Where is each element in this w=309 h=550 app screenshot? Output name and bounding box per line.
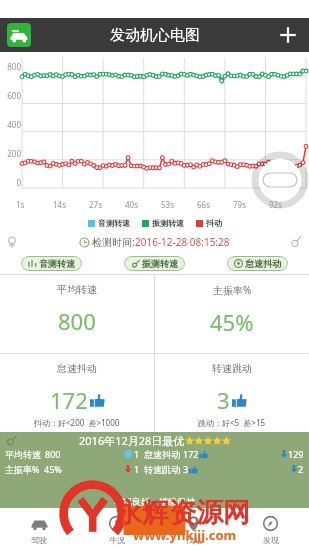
staticText: 检测时间: bbox=[92, 235, 135, 249]
staticText: 音测转速 bbox=[39, 258, 75, 269]
staticText: www.yhkjjj.com bbox=[133, 526, 237, 544]
staticText: 600 bbox=[1, 90, 21, 101]
staticText: 172 bbox=[50, 385, 88, 415]
staticText: 发现 bbox=[263, 535, 279, 545]
staticText: 45% bbox=[44, 463, 62, 475]
staticText: 53s bbox=[161, 199, 197, 210]
staticText: 怠速抖动 bbox=[245, 258, 281, 269]
staticText: 27s bbox=[89, 199, 125, 210]
staticText: 400 bbox=[1, 119, 21, 130]
button[interactable]: 找站 bbox=[155, 508, 232, 550]
staticText: 永辉资源网 bbox=[115, 496, 250, 530]
button[interactable]: 音测转速 bbox=[21, 256, 82, 271]
staticText: 转速跳动 bbox=[144, 464, 180, 475]
button[interactable]: 振测转速 bbox=[124, 256, 185, 271]
button[interactable]: 转速跳动 bbox=[155, 354, 309, 432]
button[interactable]: 发现 bbox=[232, 508, 309, 550]
button[interactable]: 平均转速 bbox=[0, 275, 154, 340]
staticText: 800 bbox=[58, 306, 96, 336]
staticText: 66s bbox=[197, 199, 233, 210]
staticText: 2 bbox=[298, 463, 304, 475]
staticText: 平均转速 bbox=[5, 449, 41, 460]
staticText: 2016-12-28 08:15:28 bbox=[135, 235, 230, 249]
staticText: 800 bbox=[1, 61, 21, 72]
staticText: 怠速抖动 bbox=[144, 449, 180, 460]
button[interactable]: 主振率% bbox=[155, 275, 309, 341]
staticText: 抖动 bbox=[206, 218, 222, 228]
staticText: 1 bbox=[134, 448, 140, 460]
staticText: 45% bbox=[210, 307, 254, 337]
staticText: 跳动：好<5 差>15 bbox=[198, 417, 266, 428]
staticText: 800 bbox=[45, 448, 61, 460]
staticText: 车况良好，继续保持 bbox=[114, 496, 195, 507]
staticText: 1 bbox=[134, 463, 140, 475]
staticText: 92s bbox=[269, 199, 305, 210]
staticText: 发动机心电图 bbox=[110, 26, 200, 45]
staticText: 主振率% bbox=[213, 283, 252, 297]
staticText: 3 bbox=[217, 385, 230, 415]
staticText: 转速跳动 bbox=[212, 362, 252, 375]
staticText: 平均转速 bbox=[57, 283, 97, 296]
staticText: 79s bbox=[233, 199, 269, 210]
staticText: 2016年12月28日最优 bbox=[79, 433, 185, 448]
button[interactable]: 怠速抖动 bbox=[227, 256, 288, 271]
staticText: 驾驶 bbox=[31, 535, 47, 545]
button[interactable]: 牛况 bbox=[78, 508, 155, 550]
staticText: 音测转速 bbox=[98, 218, 130, 228]
staticText: 牛况 bbox=[109, 535, 125, 545]
staticText: 14s bbox=[53, 199, 89, 210]
staticText: 200 bbox=[1, 148, 21, 159]
staticText: 40s bbox=[125, 199, 161, 210]
staticText: 找站 bbox=[186, 535, 202, 545]
staticText: 1s bbox=[16, 199, 53, 210]
staticText: 3 bbox=[183, 463, 189, 475]
staticText: 抖动：好<200 差>1000 bbox=[34, 417, 120, 428]
button[interactable]: 怠速抖动 bbox=[0, 354, 154, 432]
staticText: 振测转速 bbox=[142, 258, 178, 269]
staticText: 振测转速 bbox=[152, 218, 184, 228]
button[interactable]: Add bbox=[275, 22, 301, 48]
staticText: 主振率% bbox=[5, 463, 40, 475]
button[interactable]: 驾驶 bbox=[0, 508, 78, 550]
staticText: 怠速抖动 bbox=[57, 362, 97, 375]
button[interactable]: Vehicle bbox=[7, 23, 31, 47]
staticText: 129 bbox=[288, 448, 304, 460]
staticText: 0 bbox=[1, 177, 21, 188]
staticText: 172 bbox=[183, 448, 199, 460]
